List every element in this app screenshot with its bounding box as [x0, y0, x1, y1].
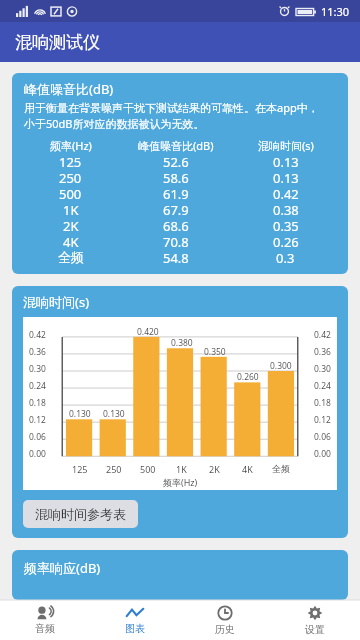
- staticText: 0.35: [273, 217, 299, 233]
- staticText: 0.24: [29, 380, 46, 392]
- staticText: 250: [106, 463, 122, 475]
- staticText: 设置: [305, 623, 325, 636]
- staticText: 全频: [58, 249, 84, 265]
- staticText: 0.13: [273, 153, 299, 169]
- staticText: 峰值噪音比(dB): [24, 80, 114, 98]
- staticText: 0.13: [273, 169, 299, 185]
- staticText: 58.6: [163, 169, 189, 185]
- staticText: 0.00: [314, 448, 331, 460]
- staticText: 68.6: [163, 217, 189, 233]
- staticText: 61.9: [163, 185, 189, 201]
- staticText: 500: [140, 463, 156, 475]
- staticText: 0.26: [273, 233, 299, 249]
- staticText: 频率响应(dB): [24, 559, 101, 577]
- staticText: 0.36: [29, 346, 46, 358]
- staticText: 0.300: [270, 360, 292, 372]
- staticText: 1K: [176, 463, 187, 475]
- staticText: 70.8: [163, 233, 189, 249]
- staticText: 0.420: [137, 326, 159, 338]
- staticText: 0.130: [103, 408, 125, 420]
- staticText: 0.12: [314, 414, 331, 426]
- staticText: 频率(Hz): [163, 476, 198, 488]
- staticText: 0.18: [29, 397, 46, 409]
- button[interactable]: 音频: [0, 600, 90, 640]
- staticText: 4K: [63, 233, 79, 249]
- staticText: 0.12: [29, 414, 46, 426]
- staticText: 67.9: [163, 201, 189, 217]
- staticText: 0.130: [69, 408, 91, 420]
- button[interactable]: 混响时间参考表: [23, 500, 138, 528]
- staticText: 125: [72, 463, 88, 475]
- staticText: 历史: [215, 623, 235, 636]
- staticText: 0.24: [314, 380, 331, 392]
- staticText: 0.3: [276, 249, 295, 265]
- button[interactable]: 设置: [270, 600, 360, 640]
- staticText: 2K: [209, 463, 220, 475]
- staticText: 混响测试仪: [15, 32, 100, 53]
- staticText: 频率(Hz): [50, 138, 92, 153]
- staticText: 1K: [63, 201, 79, 217]
- staticText: 图表: [125, 622, 145, 635]
- staticText: 2K: [63, 217, 79, 233]
- staticText: 0.380: [171, 337, 193, 349]
- staticText: 0.42: [314, 329, 331, 341]
- staticText: 0.38: [273, 201, 299, 217]
- staticText: 0.06: [29, 431, 46, 443]
- staticText: 250: [59, 169, 82, 185]
- staticText: 125: [59, 153, 82, 169]
- staticText: 混响时间参考表: [35, 506, 126, 522]
- staticText: 混响时间(s): [258, 138, 314, 153]
- staticText: 峰值噪音比(dB): [138, 138, 214, 153]
- staticText: 混响时间(s): [23, 293, 90, 311]
- staticText: 0.36: [314, 346, 331, 358]
- staticText: 0.42: [29, 329, 46, 341]
- staticText: 54.8: [163, 249, 189, 265]
- staticText: 0.350: [204, 346, 226, 358]
- staticText: 0.42: [273, 185, 299, 201]
- staticText: 音频: [35, 622, 55, 635]
- staticText: 用于衡量在背景噪声干扰下测试结果的可靠性。在本app中， 小于50dB所对应的数…: [24, 100, 319, 131]
- staticText: 0.260: [237, 371, 259, 383]
- staticText: 0.30: [29, 363, 46, 375]
- staticText: 500: [59, 185, 82, 201]
- staticText: 0.18: [314, 397, 331, 409]
- button[interactable]: 历史: [180, 600, 270, 640]
- staticText: 4K: [242, 463, 253, 475]
- staticText: 全频: [272, 463, 290, 474]
- staticText: 0.06: [314, 431, 331, 443]
- staticText: 11:30: [321, 4, 350, 19]
- staticText: 52.6: [163, 153, 189, 169]
- staticText: 0.00: [29, 448, 46, 460]
- staticText: 0.30: [314, 363, 331, 375]
- button[interactable]: 图表: [90, 600, 180, 640]
